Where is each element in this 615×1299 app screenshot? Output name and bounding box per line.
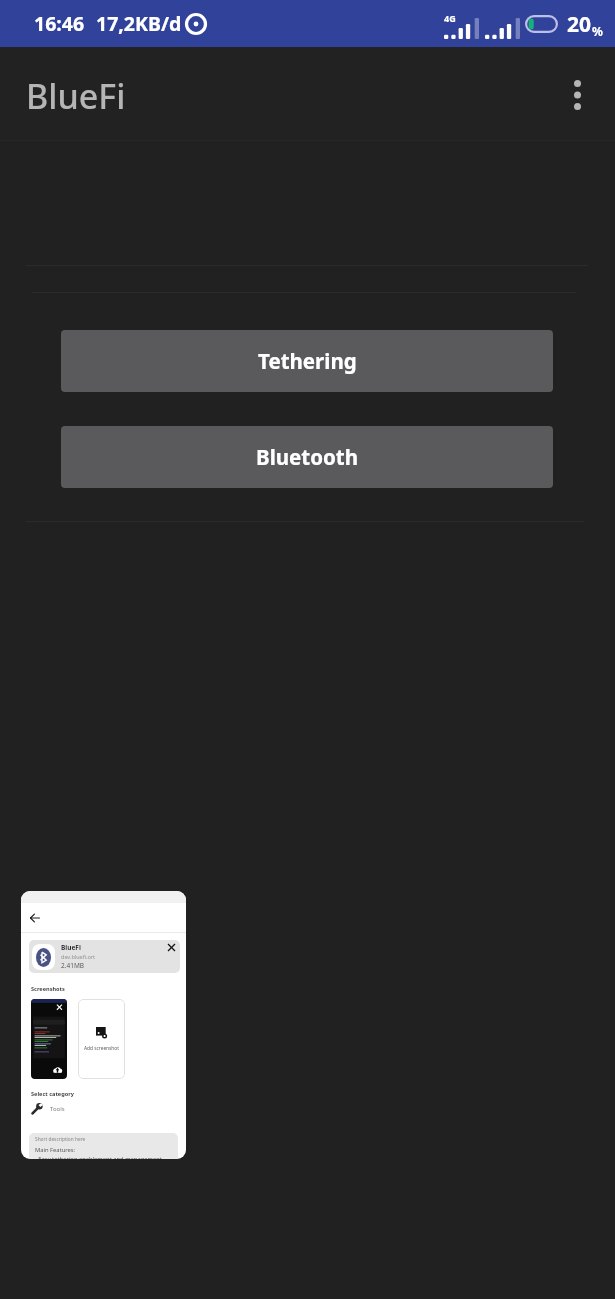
staticText: Select category bbox=[31, 1090, 74, 1098]
staticText: Main Features: bbox=[35, 1146, 76, 1154]
staticText: 2.41MB bbox=[61, 961, 85, 970]
staticText: Bluetooth bbox=[256, 443, 359, 471]
other: Back bbox=[30, 913, 40, 923]
other: Close bbox=[168, 944, 175, 951]
staticText: - Easy tethering enablement and manageme… bbox=[35, 1155, 162, 1159]
button[interactable]: Tethering bbox=[61, 330, 553, 392]
staticText: 17,2KB/d bbox=[96, 10, 182, 37]
staticText: 4G bbox=[444, 12, 456, 24]
staticText: Add screenshot bbox=[84, 1045, 119, 1052]
staticText: 16:46 bbox=[34, 10, 85, 37]
staticText: Tethering bbox=[258, 347, 357, 375]
staticText: Short description here bbox=[35, 1136, 86, 1143]
staticText: % bbox=[592, 23, 603, 39]
button[interactable] bbox=[31, 999, 67, 1079]
staticText: dev.bluefi.ort bbox=[61, 953, 96, 960]
button[interactable]: Add screenshot bbox=[78, 999, 125, 1079]
staticText: Screenshots bbox=[31, 985, 65, 993]
staticText: BlueFi bbox=[26, 73, 126, 119]
button[interactable]: More options bbox=[553, 70, 601, 118]
staticText: 20 bbox=[567, 10, 592, 39]
staticText: BlueFi bbox=[61, 943, 81, 952]
button[interactable]: Bluetooth bbox=[61, 426, 553, 488]
staticText: Tools bbox=[50, 1105, 65, 1113]
